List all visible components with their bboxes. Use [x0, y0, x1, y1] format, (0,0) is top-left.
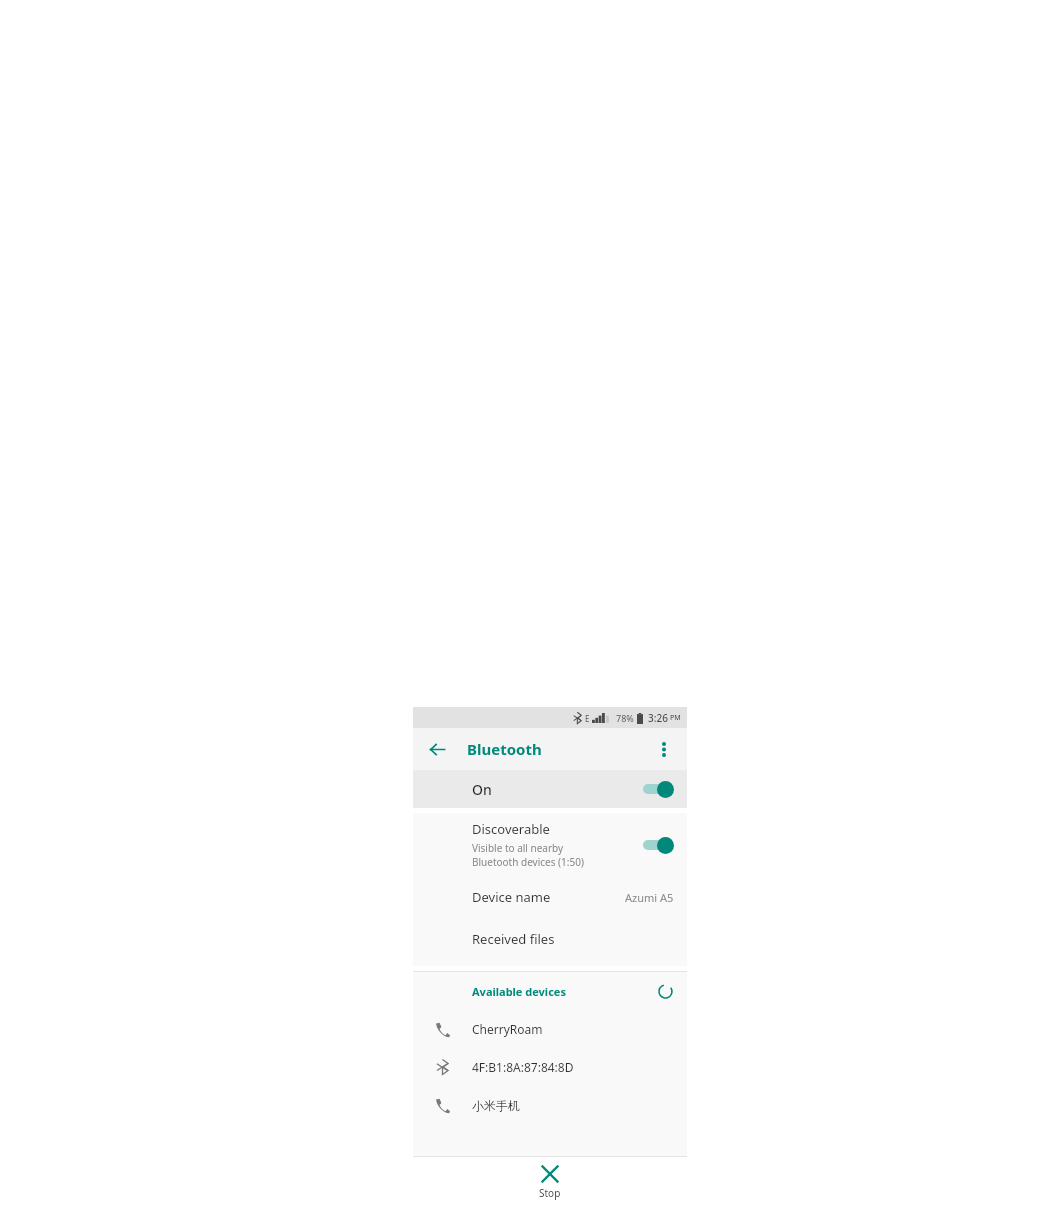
button[interactable]: Stop: [413, 1157, 687, 1205]
staticText: PM: [670, 713, 681, 723]
button[interactable]: CherryRoam: [413, 1010, 687, 1048]
staticText: Stop: [539, 1186, 561, 1200]
staticText: 78%: [616, 712, 634, 724]
button[interactable]: Discoverable: [413, 813, 687, 876]
staticText: CherryRoam: [472, 1021, 543, 1037]
staticText: 3:26: [648, 711, 668, 725]
staticText: On: [472, 780, 492, 799]
staticText: 4F:B1:8A:87:84:8D: [472, 1059, 574, 1075]
staticText: Available devices: [472, 984, 566, 999]
button[interactable]: More options: [649, 734, 679, 764]
button[interactable]: Received files: [413, 918, 687, 960]
staticText: Device name: [472, 888, 551, 906]
staticText: Received files: [472, 930, 555, 948]
staticText: E: [585, 713, 590, 724]
button[interactable]: Refresh: [651, 977, 679, 1005]
staticText: Azumi A5: [625, 890, 674, 905]
button[interactable]: 小米手机: [413, 1086, 687, 1124]
staticText: Bluetooth: [467, 739, 542, 759]
staticText: Bluetooth devices (1:50): [472, 855, 584, 869]
button[interactable]: Device name: [413, 876, 687, 918]
button[interactable]: On: [413, 770, 687, 808]
staticText: Visible to all nearby: [472, 841, 564, 855]
button[interactable]: Back: [421, 733, 453, 765]
button[interactable]: 4F:B1:8A:87:84:8D: [413, 1048, 687, 1086]
staticText: Discoverable: [472, 820, 550, 838]
staticText: 小米手机: [472, 1098, 520, 1113]
